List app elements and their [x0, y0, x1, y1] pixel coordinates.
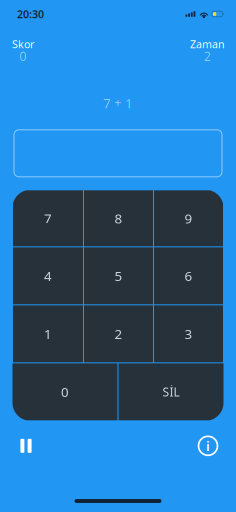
- button[interactable]: Duraklat: [11, 431, 41, 461]
- button[interactable]: 3: [154, 305, 223, 362]
- staticText: 2: [204, 48, 211, 64]
- staticText: 1: [44, 325, 52, 343]
- staticText: i: [206, 437, 210, 455]
- button[interactable]: Bilgi: [193, 431, 223, 461]
- button[interactable]: 6: [154, 247, 223, 304]
- button[interactable]: 7: [13, 190, 83, 246]
- button[interactable]: SİL: [118, 363, 223, 420]
- button[interactable]: 5: [84, 247, 153, 304]
- button[interactable]: 9: [154, 190, 223, 246]
- staticText: 8: [114, 209, 122, 227]
- staticText: 2: [114, 325, 122, 343]
- staticText: 0: [61, 383, 69, 401]
- staticText: 0: [19, 48, 26, 64]
- staticText: 4: [44, 267, 52, 285]
- staticText: 7 + 1: [103, 94, 133, 112]
- staticText: SİL: [162, 384, 179, 400]
- staticText: 6: [184, 267, 192, 285]
- button[interactable]: 8: [84, 190, 153, 246]
- staticText: 3: [184, 325, 192, 343]
- button[interactable]: 2: [84, 305, 153, 362]
- button[interactable]: 0: [12, 363, 117, 420]
- staticText: 7: [44, 209, 52, 227]
- button[interactable]: 4: [13, 247, 83, 304]
- button[interactable]: 1: [13, 305, 83, 362]
- staticText: 20:30: [17, 7, 44, 21]
- staticText: 5: [114, 267, 122, 285]
- staticText: 9: [184, 209, 192, 227]
- staticText: Skor: [12, 37, 34, 51]
- staticText: Zaman: [190, 37, 225, 51]
